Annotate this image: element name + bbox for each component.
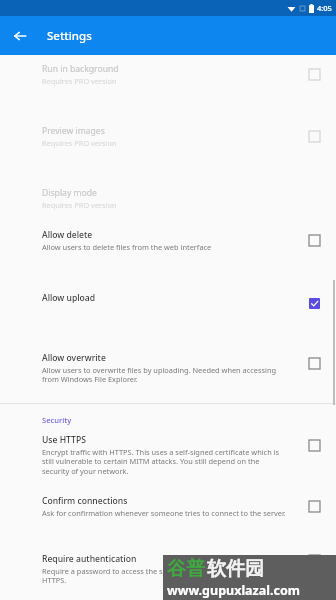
staticText: Allow users to delete files from the web… bbox=[42, 242, 212, 252]
staticText: Use HTTPS bbox=[42, 434, 86, 446]
staticText: Allow users to overwrite files by upload… bbox=[42, 365, 288, 385]
button[interactable]: Toggle setting bbox=[294, 283, 334, 323]
button[interactable]: Toggle setting bbox=[294, 486, 334, 526]
staticText: Require a password to access the server.… bbox=[42, 566, 288, 586]
button[interactable]: Back bbox=[6, 22, 34, 50]
button[interactable]: Toggle setting bbox=[294, 220, 334, 260]
staticText: Preview images bbox=[42, 125, 105, 137]
staticText: Allow upload bbox=[42, 292, 96, 304]
staticText: Encrypt traffic with HTTPS. This uses a … bbox=[42, 447, 288, 477]
button[interactable]: Toggle setting bbox=[294, 343, 334, 383]
button[interactable]: Allow overwrite bbox=[0, 346, 336, 403]
button[interactable]: Toggle setting bbox=[294, 116, 334, 156]
staticText: Allow delete bbox=[42, 229, 93, 241]
staticText: 谷普 bbox=[167, 557, 205, 581]
button[interactable]: Toggle setting bbox=[294, 544, 334, 577]
staticText: Run in background bbox=[42, 63, 119, 75]
button[interactable]: Require authentication bbox=[0, 547, 336, 600]
staticText: 软件园 bbox=[207, 557, 264, 581]
staticText: Requires PRO version bbox=[42, 200, 117, 210]
staticText: Allow overwrite bbox=[42, 352, 106, 364]
staticText: Display mode bbox=[42, 187, 97, 199]
button[interactable]: Preview images bbox=[0, 114, 336, 176]
staticText: www.gupuxlazal.com bbox=[167, 582, 300, 599]
staticText: Requires PRO version bbox=[42, 138, 117, 148]
button[interactable]: Confirm connections bbox=[0, 489, 336, 547]
staticText: Requires PRO version bbox=[42, 76, 117, 86]
staticText: Require authentication bbox=[42, 553, 137, 565]
staticText: Settings bbox=[47, 28, 92, 44]
staticText: Confirm connections bbox=[42, 495, 128, 507]
staticText: Ask for confirmation whenever someone tr… bbox=[42, 508, 286, 518]
button[interactable]: Use HTTPS bbox=[0, 428, 336, 489]
button[interactable]: Toggle setting bbox=[294, 425, 334, 465]
button[interactable]: Allow upload bbox=[0, 281, 336, 346]
button[interactable]: Run in background bbox=[0, 60, 336, 114]
button[interactable]: Allow delete bbox=[0, 223, 336, 281]
button[interactable]: Toggle setting bbox=[294, 54, 334, 94]
button[interactable]: Display mode bbox=[0, 176, 336, 223]
staticText: 4:05 bbox=[317, 3, 332, 13]
staticText: Security bbox=[42, 415, 72, 425]
